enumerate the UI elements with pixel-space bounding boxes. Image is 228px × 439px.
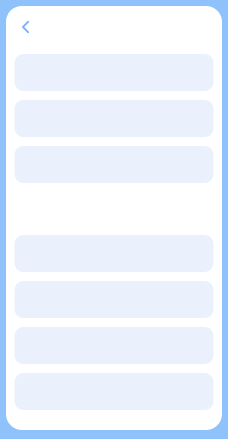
button[interactable]: Back: [8, 8, 42, 42]
